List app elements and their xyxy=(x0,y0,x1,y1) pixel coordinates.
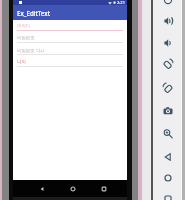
staticText: Ex_EditText xyxy=(17,9,51,17)
button[interactable]: Home xyxy=(67,183,78,194)
button[interactable]: Overview xyxy=(162,193,174,200)
button[interactable]: 비밀번호 다시 xyxy=(17,47,123,58)
button[interactable]: 비밀번호 xyxy=(17,35,123,46)
button[interactable]: Recent apps xyxy=(98,183,109,194)
staticText: 나이 xyxy=(17,59,26,65)
button[interactable]: Volume up xyxy=(162,15,174,27)
button[interactable]: Rotate right xyxy=(162,82,174,94)
staticText: 아이디 xyxy=(17,23,31,29)
button[interactable]: Back xyxy=(162,151,174,163)
staticText: 2:21 xyxy=(117,0,125,5)
button[interactable]: Rotate left xyxy=(162,58,174,70)
button[interactable]: Take screenshot xyxy=(162,105,174,117)
button[interactable]: Power xyxy=(162,0,174,6)
button[interactable]: 나이 xyxy=(17,59,123,70)
button[interactable]: 아이디 xyxy=(17,23,123,34)
button[interactable]: Home xyxy=(162,172,174,184)
button[interactable]: Ex_EditText xyxy=(13,5,127,20)
button[interactable]: Volume down xyxy=(162,37,174,49)
staticText: 비밀번호 xyxy=(17,35,35,41)
button[interactable]: Zoom xyxy=(162,128,174,140)
staticText: 비밀번호 다시 xyxy=(17,47,45,53)
button[interactable]: Back xyxy=(36,183,47,194)
